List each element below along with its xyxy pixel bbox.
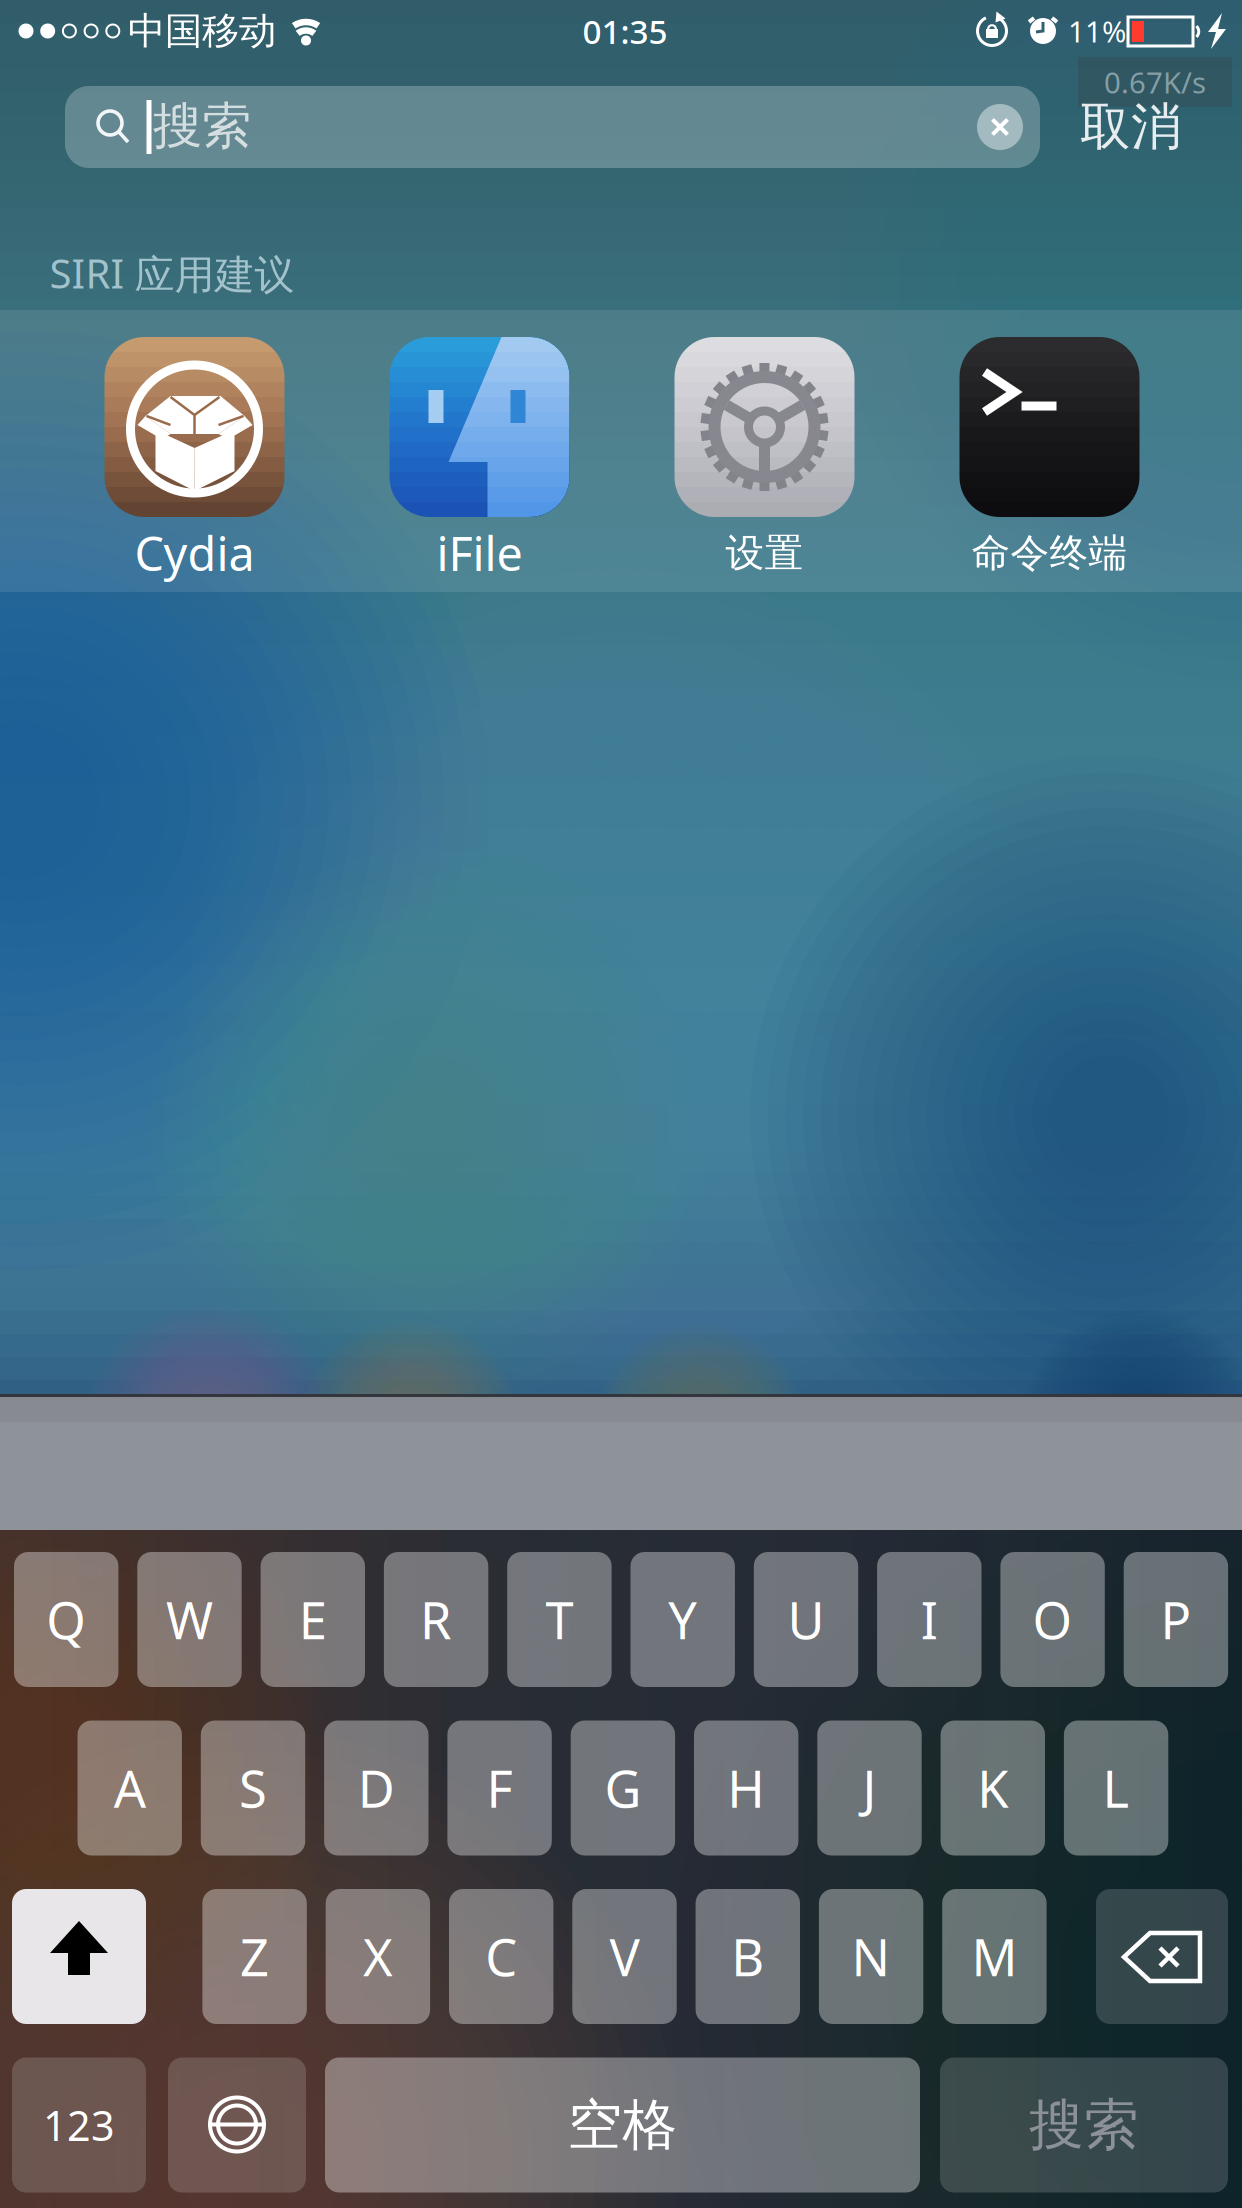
button[interactable]: R <box>384 1552 488 1687</box>
staticText: I <box>921 1586 938 1653</box>
staticText: Q <box>46 1586 86 1653</box>
staticText: J <box>862 1754 876 1822</box>
button[interactable]: 搜索 <box>940 2057 1228 2192</box>
staticText: P <box>1160 1586 1191 1653</box>
staticText: Y <box>668 1586 697 1653</box>
button[interactable] <box>959 337 1139 517</box>
staticText: 中国移动 <box>128 8 276 54</box>
staticText: 取消 <box>1080 96 1182 158</box>
button[interactable]: I <box>877 1552 981 1687</box>
staticText: 01:35 <box>582 9 667 53</box>
staticText: 搜索 <box>1029 2091 1139 2158</box>
staticText: Cydia <box>134 522 254 584</box>
button[interactable]: Y <box>630 1552 735 1687</box>
staticText: iFile <box>436 522 522 584</box>
button[interactable]: X <box>326 1889 430 2024</box>
button[interactable]: Clear text <box>977 104 1023 150</box>
button[interactable] <box>104 337 284 517</box>
button[interactable]: U <box>754 1552 858 1687</box>
staticText: U <box>787 1586 824 1653</box>
staticText: C <box>485 1923 517 1990</box>
staticText: F <box>487 1754 513 1822</box>
button[interactable]: J <box>817 1720 922 1855</box>
button[interactable]: E <box>261 1552 365 1687</box>
button[interactable]: T <box>507 1552 612 1687</box>
staticText: G <box>604 1754 641 1822</box>
button[interactable]: N <box>819 1889 923 2024</box>
button[interactable]: Q <box>14 1552 118 1687</box>
staticText: 123 <box>43 2098 115 2152</box>
button[interactable]: L <box>1064 1720 1168 1855</box>
staticText: H <box>727 1754 765 1822</box>
button[interactable]: V <box>572 1889 677 2024</box>
button[interactable]: Shift <box>12 1889 146 2024</box>
button[interactable]: B <box>696 1889 800 2024</box>
staticText: O <box>1033 1586 1073 1653</box>
button[interactable]: Next keyboard <box>168 2057 306 2192</box>
staticText: N <box>852 1923 891 1990</box>
staticText: X <box>363 1923 393 1990</box>
staticText: 设置 <box>725 529 803 577</box>
staticText: M <box>971 1923 1017 1990</box>
button[interactable]: 取消 <box>1080 96 1182 158</box>
staticText: L <box>1103 1754 1130 1822</box>
staticText: B <box>731 1923 764 1990</box>
staticText: T <box>545 1586 573 1653</box>
staticText: S <box>239 1754 267 1822</box>
staticText: 0.67K/s <box>1104 62 1206 101</box>
button[interactable]: O <box>1000 1552 1105 1687</box>
staticText: A <box>114 1754 146 1822</box>
staticText: R <box>420 1586 452 1653</box>
staticText: 11% <box>1068 11 1126 50</box>
staticText: W <box>166 1586 213 1653</box>
button[interactable]: 搜索 <box>65 86 1040 168</box>
button[interactable]: F <box>447 1720 552 1855</box>
button[interactable]: A <box>77 1720 182 1855</box>
button[interactable]: K <box>941 1720 1045 1855</box>
staticText: 搜索 <box>153 96 251 156</box>
staticText: SIRI 应用建议 <box>49 246 294 300</box>
button[interactable]: 空格 <box>325 2057 920 2192</box>
staticText: K <box>977 1754 1008 1822</box>
staticText: 命令终端 <box>971 529 1127 577</box>
button[interactable]: G <box>571 1720 675 1855</box>
button[interactable]: Z <box>202 1889 307 2024</box>
button[interactable]: P <box>1124 1552 1228 1687</box>
staticText: 空格 <box>567 2091 677 2158</box>
button[interactable] <box>389 337 569 517</box>
button[interactable]: 123 <box>12 2057 146 2192</box>
button[interactable]: H <box>694 1720 798 1855</box>
staticText: Z <box>240 1923 269 1990</box>
button[interactable] <box>674 337 854 517</box>
button[interactable]: W <box>137 1552 242 1687</box>
button[interactable]: S <box>201 1720 305 1855</box>
staticText: V <box>609 1923 639 1990</box>
staticText: D <box>358 1754 395 1822</box>
staticText: E <box>299 1586 327 1653</box>
button[interactable]: M <box>942 1889 1047 2024</box>
button[interactable]: D <box>324 1720 428 1855</box>
button[interactable]: C <box>449 1889 553 2024</box>
button[interactable]: Delete <box>1096 1889 1228 2024</box>
